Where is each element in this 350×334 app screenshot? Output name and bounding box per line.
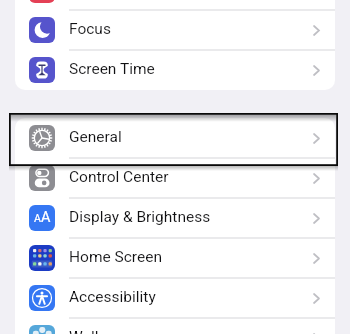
button[interactable]: Screen Time [15,50,335,90]
staticText: General [69,128,122,146]
staticText: A [34,212,41,224]
button[interactable]: Home Screen [15,238,335,278]
button[interactable]: Sounds & Haptics [15,0,335,10]
button[interactable]: Display & Brightness [15,198,335,238]
staticText: Focus [69,20,111,38]
staticText: A [41,209,51,226]
button[interactable]: Control Center [15,158,335,198]
staticText: Accessibility [69,288,156,306]
button[interactable]: General highlighted [9,113,338,166]
staticText: Control Center [69,168,169,186]
button[interactable]: Focus [15,10,335,50]
staticText: Screen Time [69,60,155,78]
staticText: Display & Brightness [69,208,211,226]
staticText: Wallpaper [69,328,138,334]
button[interactable]: General [15,118,335,158]
button[interactable]: Accessibility [15,278,335,318]
button[interactable]: Wallpaper [15,318,335,334]
staticText: Home Screen [69,248,162,266]
